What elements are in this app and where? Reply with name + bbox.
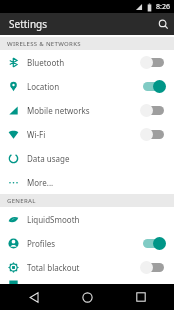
- button[interactable]: Bluetooth: [0, 50, 174, 74]
- button[interactable]: LiquidSmooth: [0, 207, 174, 231]
- staticText: Settings: [9, 17, 48, 31]
- button[interactable]: [0, 279, 174, 284]
- staticText: LiquidSmooth: [27, 214, 166, 225]
- button[interactable]: Data usage: [0, 146, 174, 170]
- button[interactable]: Mobile networks: [0, 98, 174, 122]
- staticText: WIRELESS & NETWORKS: [7, 40, 81, 48]
- staticText: 8:26: [156, 2, 170, 12]
- staticText: Location: [27, 81, 140, 92]
- button[interactable]: Profiles: [0, 231, 174, 255]
- button[interactable]: Total blackout: [0, 255, 174, 279]
- staticText: Total blackout: [27, 262, 140, 273]
- staticText: Profiles: [27, 238, 140, 249]
- staticText: Data usage: [27, 153, 166, 164]
- staticText: Bluetooth: [27, 57, 140, 68]
- button[interactable]: Search: [152, 13, 174, 35]
- button[interactable]: Recent apps: [121, 284, 161, 310]
- button[interactable]: Wi-Fi: [0, 122, 174, 146]
- button[interactable]: Back: [14, 284, 54, 310]
- staticText: More...: [27, 177, 166, 188]
- staticText: GENERAL: [7, 197, 36, 205]
- button[interactable]: Home: [67, 284, 107, 310]
- staticText: Mobile networks: [27, 105, 140, 116]
- button[interactable]: Location: [0, 74, 174, 98]
- staticText: Wi-Fi: [27, 129, 140, 140]
- button[interactable]: More...: [0, 170, 174, 194]
